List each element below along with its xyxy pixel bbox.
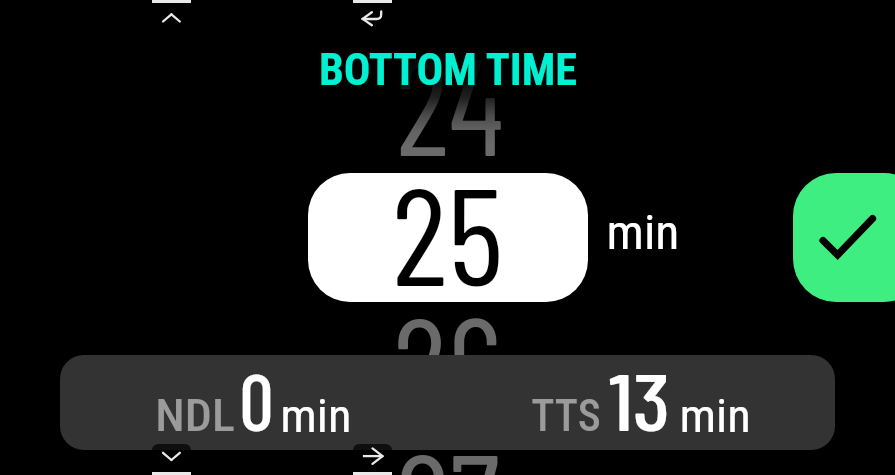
button[interactable]: Confirm (793, 173, 895, 302)
button[interactable]: Scroll up (152, 0, 191, 30)
button[interactable]: Select (353, 0, 392, 30)
button[interactable] (308, 173, 588, 302)
button[interactable]: Scroll down (152, 444, 191, 475)
button[interactable]: Next (353, 444, 392, 475)
